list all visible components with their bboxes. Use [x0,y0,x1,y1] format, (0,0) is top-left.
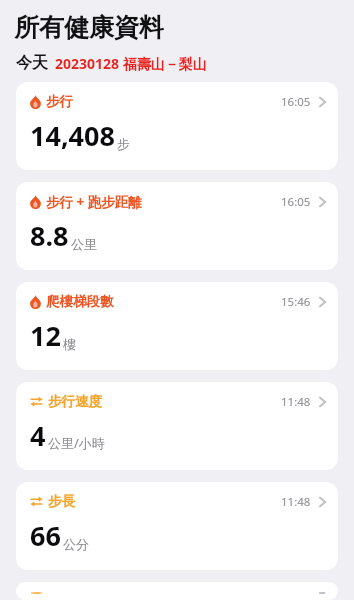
staticText: 樓 [63,336,76,352]
staticText: 4 [30,417,46,454]
staticText: 公分 [63,536,89,552]
staticText: 16:05 [281,194,311,210]
staticText: 步行速度 [48,393,102,410]
button[interactable]: 步行 [16,82,338,170]
staticText: 步長 [48,493,75,510]
staticText: 12 [30,317,61,354]
staticText: 公里/小時 [48,434,105,452]
staticText: 今天 [16,53,48,73]
staticText: 步行 + 跑步距離 [46,193,142,211]
other: 顯示更多 [319,96,326,108]
other: 顯示更多 [319,296,326,308]
button[interactable]: 步長 [16,482,338,570]
staticText: 公里 [71,236,97,252]
staticText: 步行 [46,93,73,110]
staticText: 11:48 [281,394,311,410]
staticText: 11:48 [281,494,311,510]
staticText: 20230128 福壽山－梨山 [55,54,207,73]
staticText: 所有健康資料 [14,12,164,43]
staticText: 16:05 [281,94,311,110]
other: 顯示更多 [319,196,326,208]
staticText: 14,408 [30,117,115,154]
button[interactable]: 步行不對稱性百分比 [16,582,338,600]
staticText: 66 [30,517,61,554]
staticText: 8.8 [30,217,69,254]
staticText: 爬樓梯段數 [46,293,114,310]
staticText: 步 [117,136,130,152]
other: 顯示更多 [319,496,326,508]
staticText: 15:46 [281,294,311,310]
button[interactable]: 步行 + 跑步距離 [16,182,338,270]
button[interactable]: 步行速度 [16,382,338,470]
other: 顯示更多 [319,396,326,408]
button[interactable]: 爬樓梯段數 [16,282,338,370]
